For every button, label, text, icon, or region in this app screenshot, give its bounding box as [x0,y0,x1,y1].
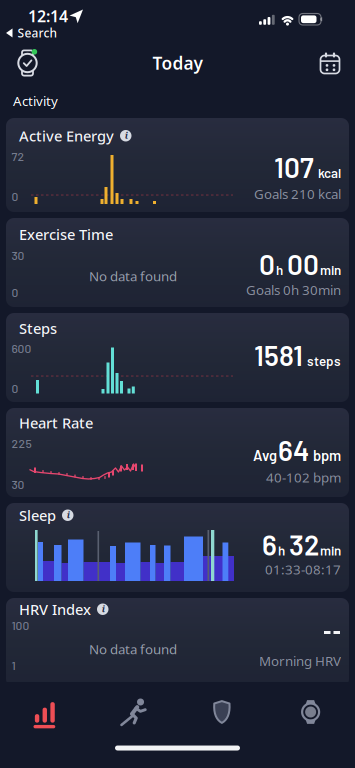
staticText: Heart Rate [19,413,93,432]
staticText: bpm [310,446,341,464]
staticText: 0 [259,247,275,281]
staticText: Morning HRV [259,652,341,670]
staticText: 0 [11,189,18,203]
staticText: 600 [11,341,31,355]
button[interactable]: HRV Index [6,598,349,687]
staticText: 00 [287,247,319,281]
button[interactable]: Watch status [15,49,40,77]
staticText: 1 [11,658,15,672]
staticText: 32 [289,527,319,561]
staticText: 1581 [254,338,303,372]
staticText: i [125,129,128,142]
button[interactable]: Health [177,688,266,736]
staticText: i [102,602,105,615]
staticText: Goals 0h 30min [246,281,341,299]
button[interactable]: Calendar [320,51,340,72]
staticText: No data found [89,267,177,285]
staticText: kcal [315,165,341,181]
staticText: Sleep [19,505,56,525]
staticText: 30 [11,248,24,262]
staticText: min [320,542,341,558]
staticText: steps [304,353,341,369]
staticText: 30 [11,477,24,491]
staticText: 107 [274,150,314,184]
staticText: 12:14 [28,5,68,27]
staticText: 225 [11,436,31,450]
staticText: i [67,508,70,521]
staticText: Activity [13,92,58,110]
button[interactable]: Active Energy [6,118,349,212]
staticText: 64 [278,433,309,467]
button[interactable]: Back to Search [5,25,57,41]
staticText: 0 [11,381,18,395]
staticText: h [278,542,288,558]
staticText: 72 [11,149,24,163]
staticText: h [276,262,286,278]
staticText: 6 [262,527,277,561]
staticText: HRV Index [19,599,91,619]
button[interactable]: Exercise [89,688,178,736]
staticText: No data found [89,640,177,658]
staticText: Steps [19,318,57,338]
staticText: 100 [11,618,29,632]
staticText: Today [152,51,202,74]
staticText: Avg [253,446,277,464]
staticText: 0 [11,285,18,299]
staticText: 40-102 bpm [266,468,341,486]
staticText: Goals 210 kcal [254,185,341,203]
staticText: 01:33-08:17 [265,560,341,578]
button[interactable]: Heart Rate [6,408,349,497]
button[interactable]: Steps [6,313,349,402]
button[interactable]: Activity [0,688,89,736]
staticText: Active Energy [19,126,114,145]
staticText: min [320,262,341,278]
button[interactable]: Exercise Time [6,218,349,307]
button[interactable]: Sleep [6,503,349,592]
button[interactable]: Device [266,688,355,736]
staticText: Search [17,25,57,41]
staticText: Exercise Time [19,224,113,244]
